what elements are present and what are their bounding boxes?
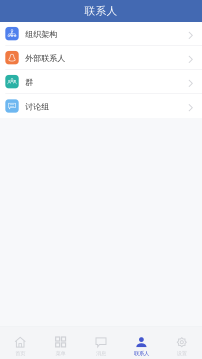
button[interactable]: 讨论组	[0, 94, 202, 118]
staticText: 设置	[177, 350, 187, 357]
button[interactable]: 群	[0, 70, 202, 94]
staticText: 组织架构	[25, 29, 57, 39]
staticText: 外部联系人	[25, 53, 65, 63]
button[interactable]: 组织架构	[0, 22, 202, 46]
button[interactable]: 菜单	[40, 326, 81, 359]
staticText: 联系人	[84, 4, 117, 17]
button[interactable]: 设置	[162, 326, 202, 359]
staticText: 消息	[96, 350, 106, 357]
staticText: 菜单	[56, 350, 66, 357]
staticText: 讨论组	[25, 102, 49, 112]
button[interactable]: 联系人	[121, 326, 162, 359]
button[interactable]: 首页	[0, 326, 40, 359]
button[interactable]: 外部联系人	[0, 46, 202, 70]
staticText: 联系人	[134, 350, 149, 357]
staticText: 群	[25, 77, 33, 87]
button[interactable]: 消息	[81, 326, 121, 359]
staticText: 首页	[15, 350, 25, 357]
